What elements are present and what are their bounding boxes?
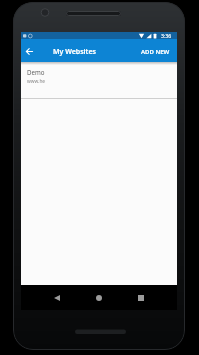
button[interactable] (24, 46, 35, 57)
button[interactable] (85, 285, 113, 310)
button[interactable] (127, 285, 155, 310)
button[interactable]: Demo (21, 62, 177, 98)
staticText: www.he (27, 78, 46, 85)
staticText: Demo (27, 68, 45, 76)
button[interactable]: ADD NEW (139, 46, 172, 58)
staticText: 3:36 (161, 32, 172, 39)
button[interactable] (43, 285, 71, 310)
staticText: ADD NEW (141, 48, 170, 56)
staticText: My Websites (53, 47, 96, 57)
